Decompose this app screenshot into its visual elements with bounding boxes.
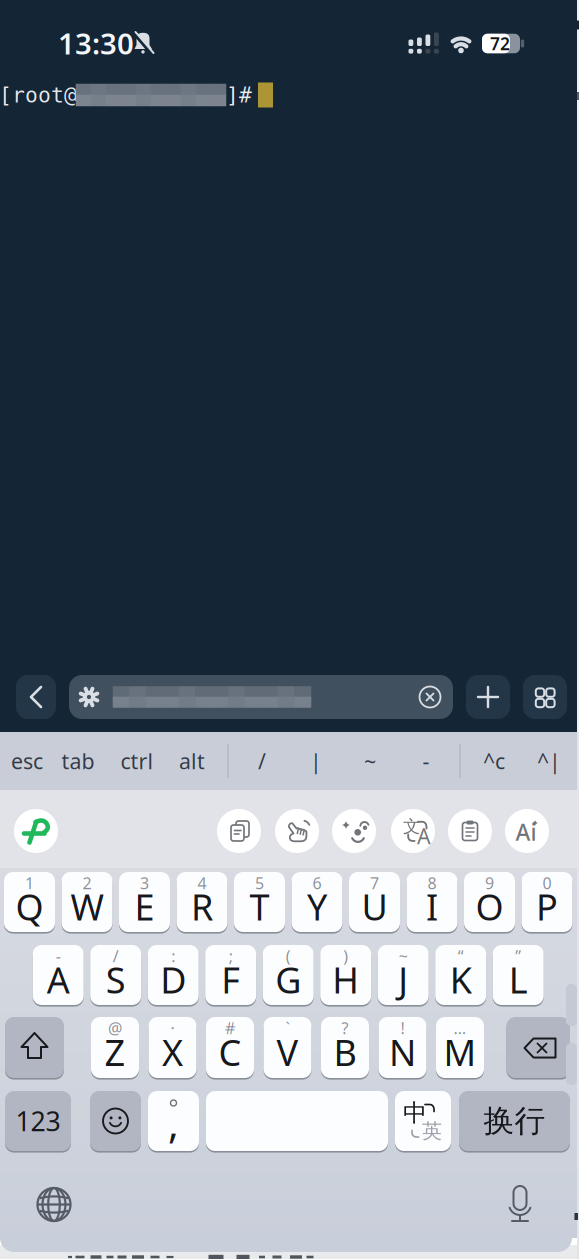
- button[interactable]: ~: [346, 736, 394, 786]
- staticText: /: [258, 747, 266, 775]
- button[interactable]: Back: [16, 675, 56, 719]
- staticText: N: [389, 1028, 416, 1076]
- staticText: U: [361, 883, 387, 930]
- staticText: B: [333, 1028, 356, 1076]
- staticText: -: [422, 747, 429, 775]
- staticText: T: [249, 883, 269, 930]
- staticText: tab: [61, 747, 94, 775]
- staticText: ·: [170, 1017, 174, 1039]
- staticText: E: [134, 883, 154, 930]
- button[interactable]: Emoji search: [332, 809, 376, 853]
- button[interactable]: X: [148, 1017, 196, 1078]
- button[interactable]: New terminal: [466, 675, 510, 719]
- button[interactable]: Shift: [5, 1017, 64, 1078]
- button[interactable]: V: [263, 1017, 311, 1078]
- button[interactable]: M: [436, 1017, 484, 1078]
- button[interactable]: ^|: [525, 736, 573, 786]
- staticText: 换行: [483, 1102, 545, 1140]
- button[interactable]: A: [33, 945, 84, 1005]
- staticText: 2: [82, 872, 91, 894]
- staticText: L: [509, 956, 528, 1003]
- button[interactable]: alt: [168, 736, 216, 786]
- button[interactable]: H: [320, 945, 371, 1005]
- staticText: 英: [422, 1119, 442, 1143]
- button[interactable]: Emoji: [90, 1091, 141, 1151]
- staticText: 5: [255, 872, 264, 894]
- button[interactable]: K: [435, 945, 486, 1005]
- staticText: C: [218, 1028, 241, 1076]
- staticText: I: [426, 883, 438, 930]
- button[interactable]: Dictate: [498, 1182, 542, 1226]
- staticText: esc: [11, 747, 43, 775]
- button[interactable]: I: [406, 872, 457, 932]
- staticText: M: [443, 1028, 476, 1076]
- button[interactable]: tab: [54, 736, 102, 786]
- button[interactable]: Command: [69, 675, 453, 719]
- staticText: P: [536, 883, 558, 930]
- button[interactable]: ctrl: [113, 736, 161, 786]
- button[interactable]: /: [238, 736, 286, 786]
- staticText: ]#: [226, 83, 252, 107]
- button[interactable]: O: [464, 872, 515, 932]
- button[interactable]: R: [176, 872, 227, 932]
- button[interactable]: L: [493, 945, 544, 1005]
- button[interactable]: Sessions: [523, 675, 567, 719]
- button[interactable]: |: [292, 736, 340, 786]
- staticText: A: [417, 822, 431, 850]
- button[interactable]: F: [205, 945, 256, 1005]
- staticText: /: [113, 945, 119, 967]
- staticText: J: [398, 956, 408, 1003]
- button[interactable]: Gesture: [275, 809, 319, 853]
- staticText: `: [285, 1017, 289, 1039]
- staticText: 123: [15, 1103, 60, 1139]
- button[interactable]: Q: [4, 872, 55, 932]
- button[interactable]: Return: [459, 1091, 570, 1151]
- button[interactable]: comma: [148, 1091, 199, 1151]
- button[interactable]: S: [90, 945, 141, 1005]
- button[interactable]: 123: [5, 1091, 71, 1151]
- button[interactable]: C: [206, 1017, 254, 1078]
- button[interactable]: -: [402, 736, 450, 786]
- button[interactable]: Delete: [506, 1017, 570, 1078]
- button[interactable]: Copy: [217, 809, 261, 853]
- button[interactable]: Translate: [391, 809, 435, 853]
- button[interactable]: E: [119, 872, 170, 932]
- button[interactable]: D: [148, 945, 199, 1005]
- staticText: 文: [403, 816, 420, 837]
- staticText: Q: [15, 883, 43, 930]
- staticText: 8: [427, 872, 436, 894]
- button[interactable]: N: [378, 1017, 426, 1078]
- button[interactable]: ^c: [470, 736, 518, 786]
- button[interactable]: Y: [291, 872, 342, 932]
- button[interactable]: U: [349, 872, 400, 932]
- button[interactable]: G: [263, 945, 314, 1005]
- button[interactable]: Sogou: [14, 809, 58, 853]
- staticText: ?: [341, 1017, 348, 1039]
- button[interactable]: W: [61, 872, 112, 932]
- staticText: @: [108, 1017, 122, 1039]
- button[interactable]: Next keyboard: [32, 1183, 76, 1227]
- staticText: 4: [197, 872, 206, 894]
- staticText: |: [310, 747, 322, 775]
- staticText: X: [162, 1028, 183, 1076]
- button[interactable]: P: [521, 872, 572, 932]
- staticText: G: [275, 956, 301, 1003]
- button[interactable]: Switch language: [395, 1091, 451, 1151]
- staticText: K: [450, 956, 472, 1003]
- button[interactable]: J: [378, 945, 429, 1005]
- staticText: [root@: [0, 83, 77, 107]
- button[interactable]: T: [234, 872, 285, 932]
- button[interactable]: Z: [91, 1017, 139, 1078]
- button[interactable]: esc: [3, 736, 51, 786]
- staticText: ”: [515, 945, 521, 967]
- staticText: 0: [542, 872, 551, 894]
- staticText: ~: [364, 747, 376, 775]
- button[interactable]: Space: [206, 1091, 388, 1151]
- staticText: D: [160, 956, 186, 1003]
- staticText: H: [332, 956, 359, 1003]
- button[interactable]: Clipboard: [448, 809, 492, 853]
- staticText: ~: [399, 945, 408, 967]
- button[interactable]: B: [321, 1017, 369, 1078]
- button[interactable]: AI: [505, 809, 549, 853]
- staticText: 1: [25, 872, 34, 894]
